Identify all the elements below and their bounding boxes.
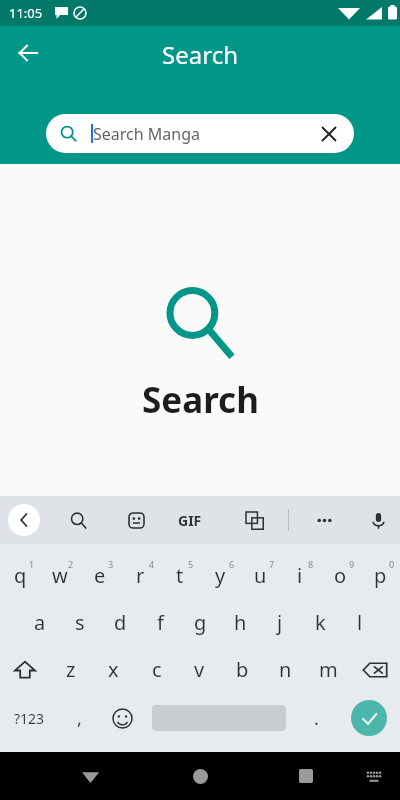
staticText: j	[277, 609, 283, 636]
staticText: h	[234, 609, 247, 636]
staticText: c	[152, 656, 162, 683]
button[interactable]: Shift	[0, 646, 50, 693]
staticText: b	[236, 656, 249, 683]
staticText: p	[374, 562, 387, 589]
button[interactable]: Search Manga	[46, 114, 354, 153]
button[interactable]: Recents	[284, 754, 328, 798]
staticText: 5	[188, 558, 194, 570]
staticText: Search	[142, 376, 259, 424]
staticText: s	[75, 609, 85, 636]
staticText: a	[34, 609, 46, 636]
button[interactable]: z	[50, 646, 92, 693]
button[interactable]: Back	[8, 33, 48, 73]
button[interactable]: u	[240, 552, 280, 599]
button[interactable]: Search	[351, 700, 387, 736]
button[interactable]: b	[221, 646, 264, 693]
staticText: o	[334, 562, 347, 589]
staticText: w	[52, 562, 68, 589]
staticText: f	[157, 609, 164, 636]
staticText: l	[357, 609, 363, 636]
staticText: 4	[149, 558, 155, 570]
staticText: Search	[162, 38, 238, 71]
staticText: i	[297, 562, 303, 589]
button[interactable]: f	[140, 599, 180, 646]
staticText: t	[176, 562, 184, 589]
staticText: 7	[269, 558, 275, 570]
button[interactable]: Translate	[238, 504, 270, 536]
staticText: .	[314, 706, 319, 731]
button[interactable]: l	[340, 599, 380, 646]
staticText: n	[279, 656, 292, 683]
staticText: 3	[108, 558, 114, 570]
button[interactable]: m	[307, 646, 350, 693]
button[interactable]: Voice input	[362, 504, 394, 536]
button[interactable]: n	[264, 646, 307, 693]
button[interactable]: d	[100, 599, 140, 646]
staticText: k	[315, 609, 326, 636]
staticText: r	[136, 562, 145, 589]
staticText: 0	[389, 558, 395, 570]
button[interactable]: t	[160, 552, 200, 599]
staticText: x	[108, 656, 119, 683]
staticText: 6	[229, 558, 235, 570]
button[interactable]: More options	[308, 504, 340, 536]
staticText: e	[94, 562, 106, 589]
button[interactable]: Search	[62, 504, 94, 536]
staticText: 9	[349, 558, 355, 570]
staticText: 11:05	[9, 4, 43, 22]
button[interactable]: w	[40, 552, 80, 599]
button[interactable]: Keyboard indicator	[356, 758, 392, 794]
staticText: q	[14, 562, 27, 589]
button[interactable]: Stickers	[120, 504, 152, 536]
button[interactable]: y	[200, 552, 240, 599]
button[interactable]: Clear	[310, 115, 348, 153]
staticText: v	[194, 656, 205, 683]
button[interactable]: e	[80, 552, 120, 599]
button[interactable]: s	[60, 599, 100, 646]
button[interactable]: h	[220, 599, 260, 646]
button[interactable]: r	[120, 552, 160, 599]
staticText: g	[194, 609, 207, 636]
button[interactable]: .	[294, 693, 338, 743]
staticText: ,	[77, 706, 82, 731]
button[interactable]: a	[20, 599, 60, 646]
staticText: d	[114, 609, 127, 636]
staticText: u	[254, 562, 267, 589]
button[interactable]: Back	[68, 754, 112, 798]
button[interactable]: g	[180, 599, 220, 646]
button[interactable]: ,	[58, 693, 100, 743]
button[interactable]: ?123	[0, 693, 58, 743]
button[interactable]: k	[300, 599, 340, 646]
staticText: 1	[29, 558, 35, 570]
button[interactable]: Home	[178, 754, 222, 798]
staticText: 8	[308, 558, 314, 570]
button[interactable]: Emoji	[100, 693, 144, 743]
staticText: 2	[68, 558, 74, 570]
button[interactable]: Back	[8, 504, 40, 536]
button[interactable]: GIF	[178, 511, 202, 530]
staticText: z	[66, 656, 76, 683]
button[interactable]: q	[0, 552, 40, 599]
button[interactable]: p	[360, 552, 400, 599]
staticText: Search Manga	[93, 123, 200, 145]
button[interactable]: c	[135, 646, 178, 693]
button[interactable]: x	[92, 646, 135, 693]
button[interactable]: Backspace	[350, 646, 400, 693]
button[interactable]: o	[320, 552, 360, 599]
staticText: y	[215, 562, 226, 589]
button[interactable]: j	[260, 599, 300, 646]
button[interactable]: v	[178, 646, 221, 693]
staticText: ?123	[14, 709, 45, 728]
staticText: m	[319, 656, 338, 683]
button[interactable]: i	[280, 552, 320, 599]
